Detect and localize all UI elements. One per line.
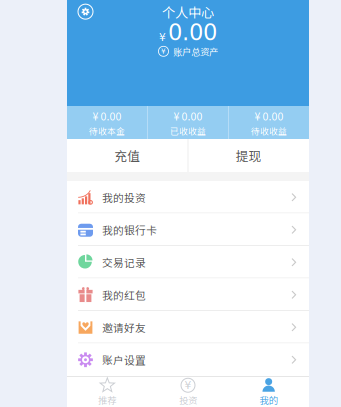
staticText: 我的银行卡	[102, 222, 157, 237]
staticText: 0.00	[168, 19, 217, 45]
button[interactable]: 充值	[67, 139, 187, 172]
staticText: 待收本金	[89, 124, 125, 137]
staticText: 提现	[236, 146, 262, 165]
button[interactable]: 推荐	[67, 377, 148, 407]
staticText: 投资	[179, 393, 197, 407]
staticText: 账户设置	[102, 352, 146, 367]
staticText: 我的投资	[102, 189, 146, 205]
button[interactable]: 我的	[228, 377, 309, 407]
button[interactable]: 我的红包	[67, 278, 309, 311]
staticText: ¥	[159, 31, 166, 43]
staticText: ¥ 0.00	[92, 108, 121, 123]
staticText: 交易记录	[102, 254, 146, 270]
staticText: 已收收益	[170, 124, 206, 137]
staticText: 个人中心	[162, 2, 214, 21]
staticText: 充值	[114, 146, 140, 165]
button[interactable]: 我的投资	[67, 181, 309, 213]
staticText: 我的	[260, 393, 278, 407]
staticText: ¥	[161, 47, 166, 55]
button[interactable]: 我的银行卡	[67, 213, 309, 246]
button[interactable]: 提现	[188, 139, 309, 172]
staticText: ¥ 0.00	[173, 108, 202, 123]
staticText: ¥ 0.00	[254, 108, 283, 123]
button[interactable]: ¥	[148, 377, 228, 407]
staticText: 推荐	[98, 393, 116, 407]
staticText: ¥	[184, 379, 191, 391]
staticText: 账户总资产	[173, 44, 218, 58]
staticText: 邀请好友	[102, 319, 146, 335]
button[interactable]: 邀请好友	[67, 311, 309, 343]
button[interactable]: 设置	[77, 3, 94, 20]
button[interactable]: 交易记录	[67, 246, 309, 278]
staticText: 我的红包	[102, 287, 146, 302]
staticText: 待收收益	[251, 124, 287, 137]
button[interactable]: 账户设置	[67, 343, 309, 376]
